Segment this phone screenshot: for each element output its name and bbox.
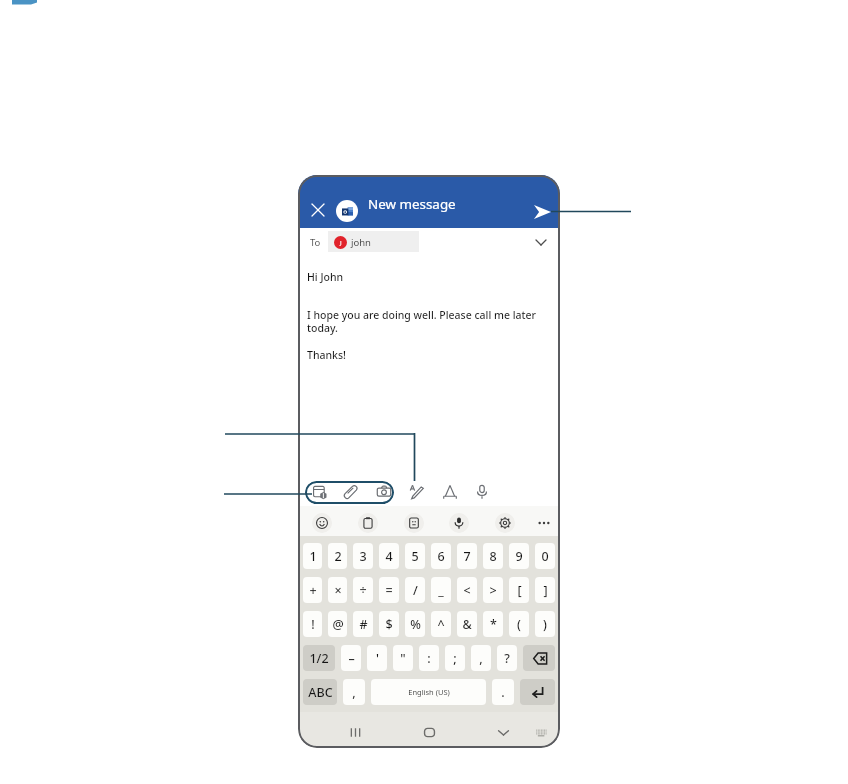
staticText: 9	[515, 548, 523, 565]
staticText: ,	[352, 684, 356, 701]
staticText: ABC	[308, 684, 333, 701]
button[interactable]: )	[535, 611, 555, 637]
button[interactable]: ABC	[303, 679, 337, 705]
button[interactable]: ×	[328, 577, 347, 603]
staticText: ÷	[359, 582, 367, 599]
staticText: &	[462, 616, 472, 633]
button[interactable]: Attach file	[341, 482, 361, 502]
button[interactable]: Emoji	[312, 513, 332, 533]
staticText: 1	[309, 548, 317, 565]
staticText: English (US)	[408, 687, 450, 697]
staticText: ^	[437, 616, 445, 633]
button[interactable]: Dictate	[472, 482, 492, 502]
staticText: 0	[541, 548, 549, 565]
button[interactable]: @	[328, 611, 347, 637]
button[interactable]: Clipboard	[358, 513, 378, 533]
button[interactable]: 6	[431, 543, 451, 569]
button[interactable]: *	[483, 611, 503, 637]
staticText: :	[427, 650, 431, 667]
button[interactable]: 7	[457, 543, 477, 569]
button[interactable]: >	[483, 577, 503, 603]
button[interactable]: Format text	[440, 482, 460, 502]
button[interactable]: 5	[405, 543, 425, 569]
staticText: New message	[368, 195, 456, 213]
button[interactable]: .	[492, 679, 514, 705]
staticText: $	[385, 616, 393, 633]
staticText: %	[410, 616, 421, 633]
button[interactable]: '	[367, 645, 387, 671]
button[interactable]: 9	[509, 543, 529, 569]
button[interactable]: Keyboard settings	[495, 513, 515, 533]
staticText: =	[385, 582, 393, 599]
button[interactable]: To field	[310, 235, 321, 249]
button[interactable]: ÷	[353, 577, 373, 603]
button[interactable]: ^	[431, 611, 451, 637]
button[interactable]: 1/2	[303, 645, 335, 671]
button[interactable]: Stickers	[404, 513, 424, 533]
button[interactable]: Hide keyboard	[530, 721, 552, 743]
button[interactable]: ,	[471, 645, 491, 671]
staticText: I hope you are doing well. Please call m…	[307, 308, 537, 335]
staticText: 7	[463, 548, 471, 565]
staticText: ,	[479, 650, 483, 667]
button[interactable]: ?	[497, 645, 517, 671]
button[interactable]: <	[457, 577, 477, 603]
staticText: _	[438, 582, 444, 599]
staticText: "	[400, 650, 406, 667]
button[interactable]: :	[419, 645, 439, 671]
button[interactable]: –	[341, 645, 361, 671]
button[interactable]: Backspace	[523, 645, 555, 671]
button[interactable]: ]	[535, 577, 555, 603]
staticText: .	[501, 684, 505, 701]
button[interactable]: Insert picture	[310, 482, 330, 502]
button[interactable]: $	[379, 611, 399, 637]
staticText: 4	[385, 548, 393, 565]
staticText: #	[359, 616, 368, 633]
button[interactable]: More options	[534, 513, 554, 533]
staticText: /	[413, 582, 418, 599]
button[interactable]: ,	[343, 679, 365, 705]
button[interactable]: #	[353, 611, 373, 637]
button[interactable]: &	[457, 611, 477, 637]
button[interactable]: !	[303, 611, 322, 637]
button[interactable]: Enter	[520, 679, 555, 705]
button[interactable]: Voice input	[449, 513, 469, 533]
button[interactable]: Draw	[407, 482, 427, 502]
button[interactable]: 8	[483, 543, 503, 569]
button[interactable]: [	[509, 577, 529, 603]
button[interactable]: /	[405, 577, 425, 603]
staticText: @	[332, 616, 344, 633]
staticText: john	[351, 236, 371, 249]
button[interactable]: Expand recipients	[531, 232, 551, 252]
button[interactable]: Recent apps	[344, 721, 366, 743]
staticText: 1/2	[309, 650, 329, 667]
staticText: ]	[543, 582, 548, 599]
button[interactable]: 2	[328, 543, 347, 569]
button[interactable]: Home	[418, 721, 440, 743]
staticText: [	[517, 582, 522, 599]
staticText: J	[340, 239, 342, 247]
button[interactable]: (	[509, 611, 529, 637]
button[interactable]: =	[379, 577, 399, 603]
staticText: >	[489, 582, 497, 599]
button[interactable]: 1	[303, 543, 322, 569]
button[interactable]: "	[393, 645, 413, 671]
button[interactable]: 4	[379, 543, 399, 569]
button[interactable]: %	[405, 611, 425, 637]
button[interactable]: English (US)	[371, 679, 486, 705]
button[interactable]: 0	[535, 543, 555, 569]
button[interactable]: Camera	[374, 482, 394, 502]
staticText: 3	[359, 548, 367, 565]
button[interactable]: Back	[492, 721, 514, 743]
staticText: Thanks!	[307, 348, 346, 362]
button[interactable]: Send	[529, 199, 555, 225]
staticText: +	[309, 582, 317, 599]
staticText: 5	[411, 548, 419, 565]
button[interactable]: _	[431, 577, 451, 603]
button[interactable]: 3	[353, 543, 373, 569]
button[interactable]: Close	[308, 200, 328, 220]
staticText: (	[517, 616, 521, 633]
staticText: 6	[437, 548, 445, 565]
button[interactable]: ;	[445, 645, 465, 671]
button[interactable]: +	[303, 577, 322, 603]
